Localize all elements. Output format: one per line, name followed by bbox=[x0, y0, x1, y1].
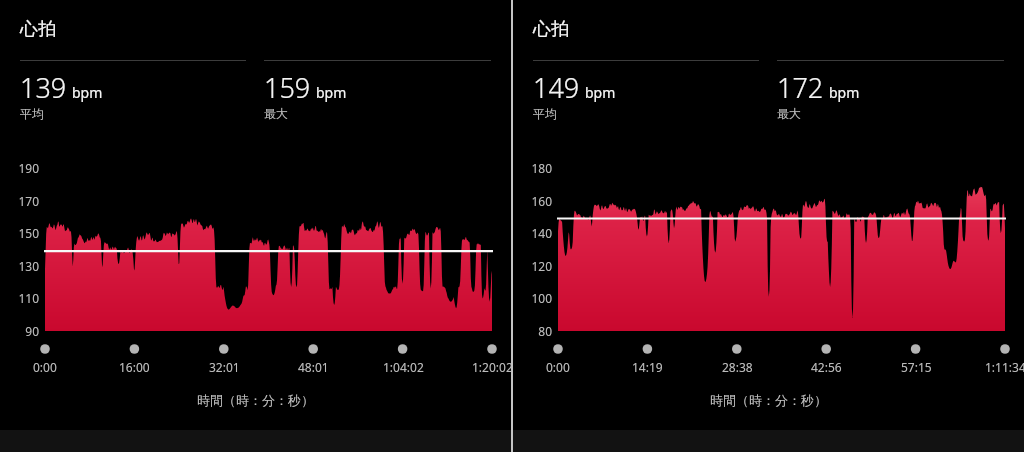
button[interactable]: 159 bbox=[264, 60, 491, 121]
staticText: bpm bbox=[585, 83, 616, 102]
staticText: 0:00 bbox=[33, 359, 57, 375]
staticText: 130 bbox=[2, 258, 39, 274]
staticText: 最大 bbox=[264, 106, 288, 121]
button[interactable]: 139 bbox=[20, 60, 246, 121]
staticText: 42:56 bbox=[811, 359, 842, 375]
staticText: bpm bbox=[316, 83, 347, 102]
staticText: 170 bbox=[2, 193, 39, 209]
staticText: 1:11:34 bbox=[985, 359, 1024, 375]
button[interactable]: 149 bbox=[533, 60, 759, 121]
staticText: 1:04:02 bbox=[383, 359, 424, 375]
staticText: 1:20:02 bbox=[472, 359, 513, 375]
staticText: 48:01 bbox=[298, 359, 329, 375]
staticText: 32:01 bbox=[209, 359, 240, 375]
staticText: 140 bbox=[515, 225, 552, 241]
staticText: 時間（時：分：秒） bbox=[197, 392, 314, 408]
staticText: 100 bbox=[515, 290, 552, 306]
staticText: 172 bbox=[777, 69, 824, 106]
staticText: 159 bbox=[264, 69, 311, 106]
staticText: 149 bbox=[533, 69, 580, 106]
button[interactable]: 172 bbox=[777, 60, 1004, 121]
staticText: 時間（時：分：秒） bbox=[710, 392, 827, 408]
staticText: 最大 bbox=[777, 106, 801, 121]
button[interactable]: 心拍 bbox=[20, 18, 56, 41]
staticText: 120 bbox=[515, 258, 552, 274]
staticText: 57:15 bbox=[901, 359, 932, 375]
staticText: 160 bbox=[515, 193, 552, 209]
staticText: 90 bbox=[2, 323, 39, 339]
staticText: 平均 bbox=[533, 106, 557, 121]
staticText: 14:19 bbox=[632, 359, 663, 375]
staticText: bpm bbox=[829, 83, 860, 102]
staticText: 110 bbox=[2, 290, 39, 306]
staticText: 80 bbox=[515, 323, 552, 339]
staticText: 16:00 bbox=[119, 359, 150, 375]
button[interactable]: 心拍 bbox=[533, 18, 569, 41]
staticText: 139 bbox=[20, 69, 67, 106]
staticText: 180 bbox=[515, 160, 552, 176]
staticText: 平均 bbox=[20, 106, 44, 121]
staticText: 28:38 bbox=[722, 359, 753, 375]
staticText: 0:00 bbox=[546, 359, 570, 375]
staticText: 150 bbox=[2, 225, 39, 241]
staticText: 190 bbox=[2, 160, 39, 176]
staticText: bpm bbox=[72, 83, 103, 102]
